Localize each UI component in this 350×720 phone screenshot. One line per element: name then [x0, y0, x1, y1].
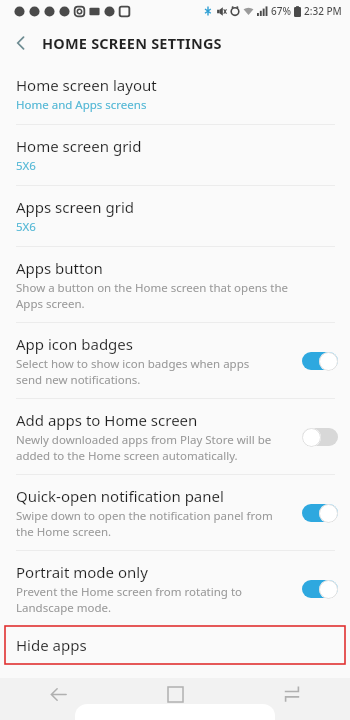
button[interactable]: About Home screen: [0, 664, 350, 698]
staticText: Show a button on the Home screen that op…: [16, 280, 288, 311]
staticText: 5X6: [16, 219, 36, 235]
button[interactable]: Toggle on: [302, 351, 338, 371]
button[interactable]: App icon badges: [0, 323, 350, 398]
button[interactable]: Add apps to Home screen: [0, 399, 350, 474]
staticText: 5X6: [16, 158, 36, 174]
staticText: Prevent the Home screen from rotating to…: [16, 584, 243, 615]
staticText: Home and Apps screens: [16, 97, 147, 113]
staticText: 67%: [271, 4, 291, 18]
button[interactable]: Back: [13, 678, 103, 710]
button[interactable]: Toggle on: [302, 579, 338, 599]
button[interactable]: Apps screen grid: [0, 186, 350, 246]
staticText: App icon badges: [16, 334, 133, 354]
staticText: Select how to show icon badges when apps…: [16, 356, 250, 387]
staticText: Apps screen grid: [16, 197, 135, 217]
staticText: Home screen grid: [16, 136, 142, 156]
staticText: Newly downloaded apps from Play Store wi…: [16, 432, 272, 463]
staticText: Hide apps: [16, 635, 87, 655]
button[interactable]: Portrait mode only: [0, 551, 350, 626]
staticText: Quick-open notification panel: [16, 486, 224, 506]
button[interactable]: Home screen layout: [0, 64, 350, 124]
staticText: Apps button: [16, 258, 103, 278]
button[interactable]: Toggle on: [302, 503, 338, 523]
button[interactable]: Recents: [247, 678, 337, 710]
staticText: Swipe down to open the notification pane…: [16, 508, 273, 539]
button[interactable]: Back: [0, 22, 42, 64]
staticText: Home screen layout: [16, 75, 157, 95]
button[interactable]: Toggle off: [302, 427, 338, 447]
button[interactable]: Hide apps: [5, 626, 345, 664]
staticText: HOME SCREEN SETTINGS: [42, 33, 222, 53]
staticText: 2:32 PM: [304, 4, 342, 18]
button[interactable]: Quick-open notification panel: [0, 475, 350, 550]
staticText: Portrait mode only: [16, 562, 148, 582]
button[interactable]: Home screen grid: [0, 125, 350, 185]
staticText: About Home screen: [16, 674, 156, 694]
button[interactable]: Home: [130, 678, 220, 710]
button[interactable]: Apps button: [0, 247, 350, 322]
staticText: Add apps to Home screen: [16, 410, 198, 430]
